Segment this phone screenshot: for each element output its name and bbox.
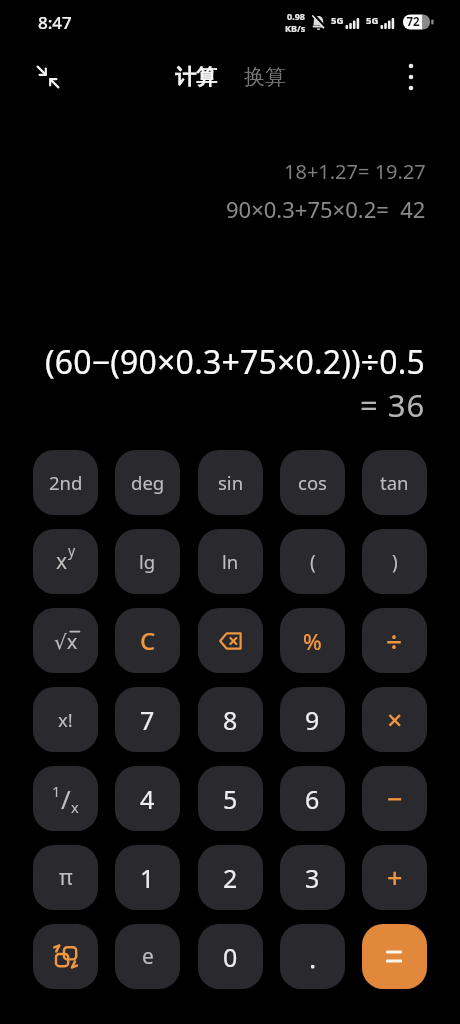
button[interactable]: 1: [33, 766, 98, 831]
button[interactable]: 2nd: [33, 450, 98, 515]
staticText: 18+1.27= 19.27: [284, 158, 426, 185]
button[interactable]: ÷: [362, 608, 427, 673]
button[interactable]: 9: [280, 687, 345, 752]
staticText: x!: [58, 707, 73, 732]
staticText: y: [68, 541, 76, 560]
button[interactable]: 2: [198, 845, 263, 910]
staticText: ×: [387, 701, 403, 738]
button[interactable]: [198, 608, 263, 673]
button[interactable]: deg: [115, 450, 180, 515]
staticText: 4: [140, 782, 155, 816]
staticText: cos: [298, 470, 327, 495]
button[interactable]: %: [280, 608, 345, 673]
button[interactable]: (: [280, 529, 345, 594]
button[interactable]: ×: [362, 687, 427, 752]
button[interactable]: cos: [280, 450, 345, 515]
staticText: 0.98: [287, 10, 305, 22]
button[interactable]: [396, 62, 426, 92]
button[interactable]: 3: [280, 845, 345, 910]
button[interactable]: 计算: [175, 64, 217, 90]
button[interactable]: 6: [280, 766, 345, 831]
staticText: /: [61, 781, 71, 816]
staticText: ): [392, 549, 398, 575]
staticText: 7: [140, 703, 155, 737]
staticText: 1: [52, 781, 61, 801]
button[interactable]: [280, 924, 345, 989]
staticText: 5G: [366, 14, 379, 27]
staticText: 1: [140, 861, 155, 895]
staticText: 6: [305, 782, 320, 816]
button[interactable]: sin: [198, 450, 263, 515]
staticText: %: [303, 626, 322, 656]
staticText: (: [310, 549, 316, 575]
staticText: ln: [222, 549, 239, 574]
button[interactable]: 4: [115, 766, 180, 831]
button[interactable]: [30, 59, 66, 95]
staticText: = 36: [360, 384, 426, 426]
staticText: tan: [380, 470, 409, 495]
staticText: x: [71, 797, 79, 817]
button[interactable]: x: [33, 529, 98, 594]
staticText: 72: [403, 14, 423, 30]
button[interactable]: e: [115, 924, 180, 989]
button[interactable]: 8: [198, 687, 263, 752]
button[interactable]: C: [115, 608, 180, 673]
button[interactable]: −: [362, 766, 427, 831]
button[interactable]: +: [362, 845, 427, 910]
staticText: KB/s: [285, 22, 306, 34]
staticText: lg: [139, 549, 156, 574]
staticText: deg: [131, 470, 165, 495]
staticText: √x: [54, 628, 78, 655]
staticText: sin: [218, 470, 244, 495]
button[interactable]: 7: [115, 687, 180, 752]
button[interactable]: 1: [115, 845, 180, 910]
staticText: π: [59, 863, 73, 892]
staticText: e: [142, 942, 154, 971]
button[interactable]: ln: [198, 529, 263, 594]
staticText: 0: [223, 940, 238, 974]
button[interactable]: x!: [33, 687, 98, 752]
button[interactable]: 5: [198, 766, 263, 831]
staticText: 换算: [244, 64, 286, 90]
button[interactable]: [33, 924, 98, 989]
staticText: +: [387, 859, 403, 896]
staticText: C: [140, 624, 156, 657]
staticText: 计算: [175, 64, 217, 90]
button[interactable]: [362, 924, 427, 989]
button[interactable]: ): [362, 529, 427, 594]
button[interactable]: π: [33, 845, 98, 910]
staticText: 2: [223, 861, 238, 895]
staticText: 90×0.3+75×0.2= 42: [226, 194, 426, 224]
staticText: 2nd: [49, 470, 83, 495]
staticText: 5: [223, 782, 238, 816]
button[interactable]: 0: [198, 924, 263, 989]
button[interactable]: 换算: [244, 64, 286, 90]
staticText: (60−(90×0.3+75×0.2))÷0.5: [45, 340, 426, 384]
staticText: x: [56, 547, 68, 576]
staticText: 3: [305, 861, 320, 895]
staticText: ÷: [386, 622, 403, 660]
staticText: 5G: [331, 14, 344, 27]
staticText: 8:47: [38, 11, 72, 34]
button[interactable]: √x: [33, 608, 98, 673]
button[interactable]: lg: [115, 529, 180, 594]
button[interactable]: tan: [362, 450, 427, 515]
staticText: 8: [223, 703, 238, 737]
staticText: 9: [305, 703, 320, 737]
staticText: −: [387, 780, 403, 817]
